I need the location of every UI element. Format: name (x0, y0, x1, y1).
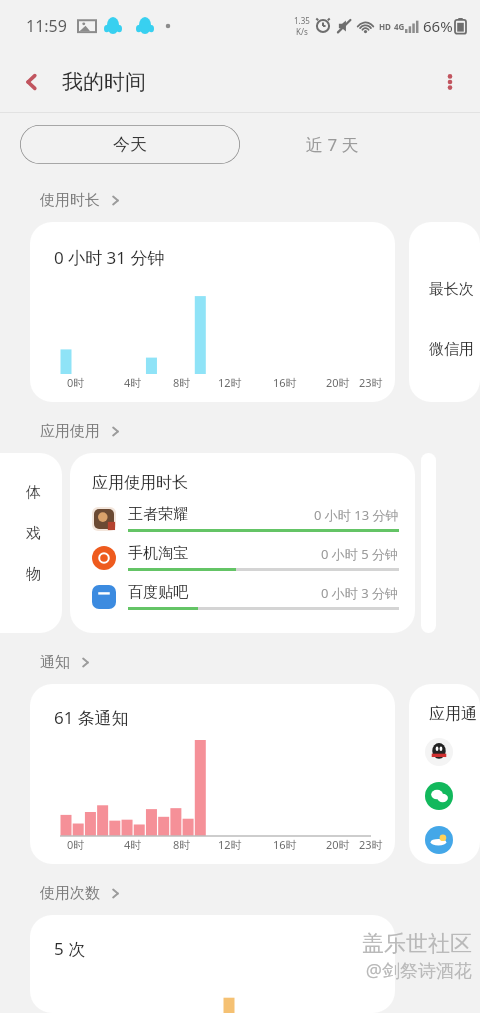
button[interactable]: 应用通 (409, 684, 480, 864)
staticText: 8时 (173, 837, 191, 852)
staticText: 16时 (273, 837, 297, 852)
button[interactable]: 最长次 (409, 222, 480, 402)
staticText: 5 次 (54, 937, 86, 960)
button[interactable]: 使用时长 (40, 189, 130, 212)
staticText: 23时 (359, 837, 383, 852)
staticText: 王者荣耀 (128, 505, 188, 524)
button[interactable]: 应用使用 (40, 420, 130, 443)
button[interactable]: 0 小时 31 分钟 (30, 222, 395, 402)
staticText: 20时 (326, 375, 350, 390)
button[interactable]: 使用次数 (40, 882, 130, 905)
staticText: 体 (26, 483, 41, 502)
staticText: K/s (296, 26, 308, 37)
button[interactable]: 61 条通知 (30, 684, 395, 864)
button[interactable]: 近 7 天 (292, 125, 373, 164)
staticText: 最长次 (429, 280, 474, 299)
staticText: 11:59 (26, 15, 67, 37)
button[interactable]: 通知 (40, 651, 100, 674)
button[interactable]: 应用使用时长 (70, 453, 415, 633)
button[interactable]: More options (428, 60, 472, 104)
staticText: 0 小时 31 分钟 (54, 246, 165, 269)
staticText: 16时 (273, 375, 297, 390)
staticText: 12时 (218, 837, 242, 852)
staticText: HD (379, 21, 391, 32)
staticText: 使用次数 (40, 884, 100, 903)
button[interactable]: 体 (0, 453, 62, 633)
staticText: 0 小时 13 分钟 (314, 506, 399, 524)
staticText: 66% (423, 16, 453, 36)
staticText: 0时 (67, 837, 85, 852)
staticText: 应用通 (429, 704, 477, 724)
staticText: 使用时长 (40, 191, 100, 210)
staticText: 4时 (124, 837, 142, 852)
button[interactable]: 5 次 (30, 915, 395, 1013)
staticText: 61 条通知 (54, 706, 129, 729)
staticText: 物 (26, 565, 41, 584)
staticText: 4G (394, 21, 405, 32)
button[interactable]: Back (10, 60, 54, 104)
staticText: 0 小时 3 分钟 (321, 584, 399, 602)
staticText: 通知 (40, 653, 70, 672)
staticText: @剑祭诗酒花 (365, 958, 472, 983)
staticText: 手机淘宝 (128, 544, 188, 563)
staticText: 微信用 (429, 340, 474, 359)
staticText: 12时 (218, 375, 242, 390)
staticText: 1.35 (294, 15, 310, 26)
staticText: 应用使用时长 (92, 473, 188, 493)
button[interactable]: 今天 (20, 125, 240, 164)
staticText: 盖乐世社区 (362, 930, 472, 958)
staticText: 4时 (124, 375, 142, 390)
staticText: 8时 (173, 375, 191, 390)
staticText: 戏 (26, 524, 41, 543)
staticText: 20时 (326, 837, 350, 852)
staticText: 百度贴吧 (128, 583, 188, 602)
staticText: 我的时间 (62, 69, 146, 95)
staticText: 0 小时 5 分钟 (321, 545, 399, 563)
staticText: 0时 (67, 375, 85, 390)
staticText: 应用使用 (40, 422, 100, 441)
staticText: 今天 (113, 134, 147, 155)
staticText: 23时 (359, 375, 383, 390)
staticText: 近 7 天 (306, 133, 359, 156)
